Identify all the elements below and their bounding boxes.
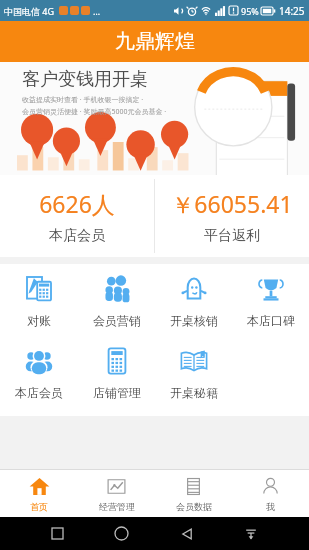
button[interactable]: 客户变钱用开桌 [0, 62, 309, 175]
staticText: 中国电信 4G [4, 5, 55, 17]
button[interactable]: 我 [232, 470, 309, 517]
staticText: 会员营销灵活便捷 · 奖励最高5000元会员基金 · [22, 107, 167, 117]
staticText: ￥66055.41 [171, 188, 293, 219]
staticText: 本店会员 [15, 385, 63, 400]
staticText: 会员数据 [176, 501, 212, 512]
button[interactable]: 经营管理 [78, 470, 155, 517]
staticText: 九鼎辉煌 [115, 29, 195, 54]
staticText: 95% [241, 5, 259, 17]
staticText: 会员营销 [93, 313, 141, 328]
button[interactable]: 会员数据 [155, 470, 232, 517]
staticText: 经营管理 [99, 501, 135, 512]
staticText: 6626人 [39, 188, 115, 219]
staticText: 收益提成实时查看 · 手机收银一按搞定 · [22, 95, 144, 105]
staticText: 对账 [27, 313, 51, 328]
staticText: 开桌秘籍 [170, 385, 218, 400]
button[interactable]: 首页 [0, 470, 78, 517]
button[interactable]: Hide navigation bar [245, 528, 257, 540]
button[interactable]: ￥66055.41 [155, 175, 309, 257]
staticText: 店铺管理 [93, 385, 141, 400]
button[interactable]: 会员营销 [78, 274, 155, 328]
staticText: 客户变钱用开桌 [22, 68, 148, 91]
button[interactable]: 店铺管理 [78, 346, 155, 400]
button[interactable]: Back [181, 528, 193, 540]
button[interactable]: 开桌核销 [155, 274, 232, 328]
staticText: 平台返利 [204, 227, 260, 245]
button[interactable]: Home [115, 527, 128, 540]
staticText: 本店会员 [49, 227, 105, 245]
staticText: 开桌核销 [170, 313, 218, 328]
button[interactable]: Recents [52, 528, 63, 539]
button[interactable]: 开桌秘籍 [155, 346, 232, 400]
staticText: 14:25 [279, 4, 305, 18]
button[interactable]: 本店口碑 [232, 274, 309, 328]
staticText: … [93, 5, 101, 17]
button[interactable]: 本店会员 [0, 346, 78, 400]
button[interactable]: 6626人 [0, 175, 154, 257]
staticText: 本店口碑 [247, 313, 295, 328]
staticText: 我 [266, 501, 275, 512]
staticText: 首页 [30, 501, 48, 512]
button[interactable]: 对账 [0, 274, 78, 328]
